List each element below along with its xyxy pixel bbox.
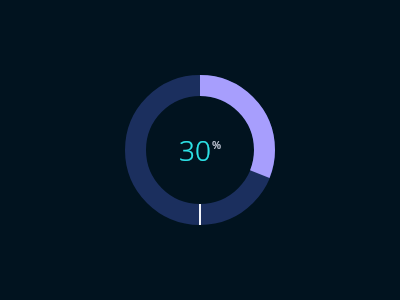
- staticText: %: [212, 137, 222, 152]
- staticText: 30: [179, 131, 211, 169]
- button[interactable]: Progress 30 percent: [125, 75, 275, 225]
